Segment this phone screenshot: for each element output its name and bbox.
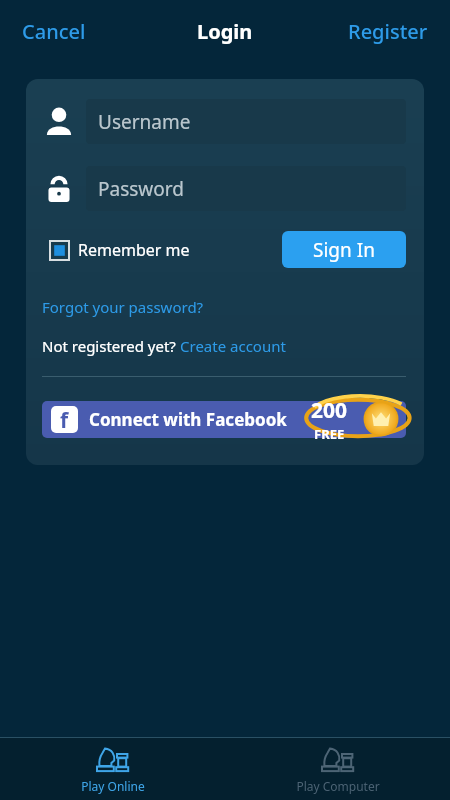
button[interactable]: Play Online — [0, 738, 225, 800]
staticText: Cancel — [22, 18, 86, 45]
button[interactable]: Play Computer — [225, 738, 450, 800]
button[interactable]: Cancel — [14, 12, 94, 51]
staticText: Connect with Facebook — [89, 408, 287, 431]
button[interactable]: Remember me — [42, 235, 190, 265]
staticText: Username — [98, 109, 191, 135]
button[interactable]: Sign In — [282, 231, 406, 268]
button[interactable]: f — [42, 401, 406, 438]
staticText: Not registered yet? — [42, 336, 180, 356]
staticText: Play Computer — [296, 778, 380, 794]
staticText: Forgot your password? — [42, 297, 204, 317]
staticText: Create account — [180, 336, 286, 356]
staticText: Remember me — [78, 239, 190, 261]
button[interactable]: Forgot your password? — [42, 294, 204, 320]
button[interactable]: Create account — [180, 336, 286, 356]
button[interactable]: Register — [340, 12, 436, 51]
button[interactable]: Password — [86, 166, 406, 211]
button[interactable]: 200 free coins bonus — [304, 395, 414, 443]
staticText: 200 — [311, 396, 348, 425]
staticText: Play Online — [81, 778, 145, 794]
staticText: Login — [197, 18, 253, 45]
staticText: FREE — [314, 425, 345, 443]
staticText: Register — [348, 18, 428, 45]
staticText: f — [60, 406, 69, 433]
staticText: Sign In — [313, 237, 375, 263]
button[interactable]: Username — [86, 99, 406, 144]
staticText: Password — [98, 176, 184, 202]
